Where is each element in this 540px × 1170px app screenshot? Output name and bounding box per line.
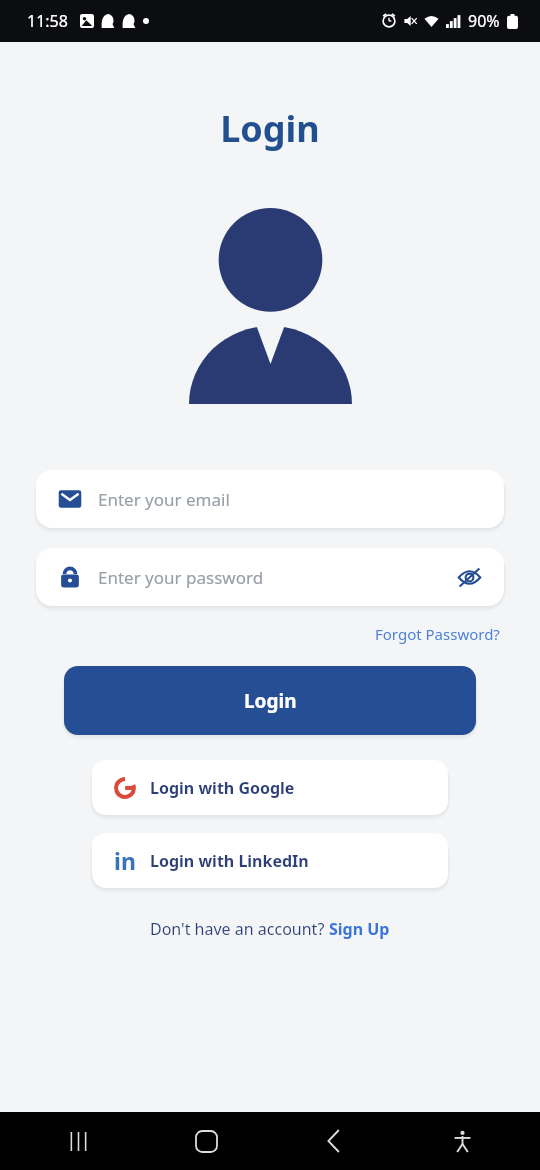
staticText: Login xyxy=(220,104,320,153)
button[interactable]: Recents xyxy=(14,1112,142,1170)
button[interactable]: Forgot Password? xyxy=(371,620,504,648)
button[interactable]: Accessibility xyxy=(398,1112,526,1170)
staticText: Login with Google xyxy=(150,777,295,799)
button[interactable]: Back xyxy=(270,1112,398,1170)
staticText: Forgot Password? xyxy=(375,624,500,644)
staticText: 11:58 xyxy=(27,10,68,32)
button[interactable]: Don't have an account? xyxy=(0,918,540,940)
staticText: Login with LinkedIn xyxy=(150,850,309,872)
button[interactable]: Home xyxy=(142,1112,270,1170)
staticText: Don't have an account? xyxy=(150,918,329,940)
button[interactable]: in xyxy=(92,833,448,888)
staticText: Login xyxy=(244,688,297,714)
staticText: 90% xyxy=(468,10,500,32)
staticText: Enter your password xyxy=(98,566,452,589)
staticText: Sign Up xyxy=(329,918,390,940)
button[interactable]: Login with Google xyxy=(92,760,448,815)
button[interactable]: Login xyxy=(64,666,476,735)
button[interactable]: Show password xyxy=(452,560,486,594)
button[interactable]: Enter your email xyxy=(36,470,504,528)
staticText: in xyxy=(114,845,136,876)
button[interactable]: Enter your password xyxy=(36,548,504,606)
staticText: Enter your email xyxy=(98,488,486,511)
